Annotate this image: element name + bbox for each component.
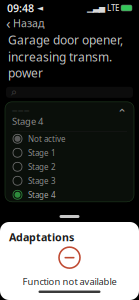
staticText: Stage 2 bbox=[28, 161, 56, 172]
button[interactable]: Stage 2 bbox=[5, 160, 134, 174]
staticText: ⌕ bbox=[11, 87, 17, 97]
button[interactable]: Stage 3 bbox=[5, 174, 134, 188]
staticText: ▁▃▅ bbox=[87, 3, 105, 13]
staticText: ◄ bbox=[34, 3, 43, 13]
staticText: Adaptations bbox=[9, 230, 74, 244]
staticText: Garage door opener, bbox=[8, 32, 123, 48]
staticText: LTE bbox=[107, 3, 119, 13]
staticText: Function not available bbox=[22, 275, 116, 287]
button[interactable]: ‹ bbox=[0, 11, 50, 35]
button[interactable]: — — — bbox=[5, 102, 134, 131]
staticText: 09:48 bbox=[7, 1, 34, 15]
staticText: Not active bbox=[28, 133, 66, 144]
staticText: Stage 3 bbox=[28, 175, 56, 186]
staticText: Stage 4 bbox=[28, 189, 56, 200]
staticText: Назад bbox=[13, 16, 44, 30]
button[interactable]: Stage 1 bbox=[5, 146, 134, 160]
staticText: ⌃ bbox=[117, 107, 127, 120]
staticText: increasing transm. power bbox=[8, 49, 112, 81]
staticText: — — — bbox=[12, 107, 29, 114]
button[interactable]: Not active bbox=[5, 132, 134, 146]
staticText: ‹ bbox=[6, 13, 11, 33]
staticText: Stage 1 bbox=[28, 147, 56, 158]
staticText: Stage 4 bbox=[12, 115, 43, 127]
button[interactable]: Stage 4 bbox=[5, 188, 134, 202]
